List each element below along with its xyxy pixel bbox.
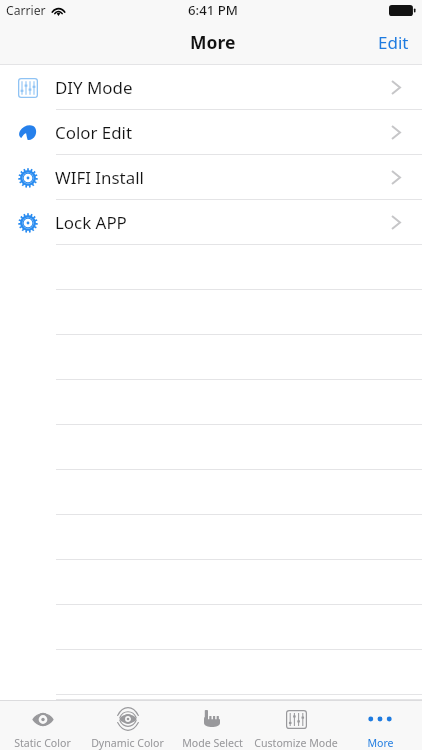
staticText: Mode Select: [182, 736, 243, 750]
button[interactable]: Mode Select: [170, 701, 254, 750]
button[interactable]: Lock APP: [0, 200, 422, 245]
button[interactable]: Edit: [364, 21, 422, 64]
staticText: More: [367, 736, 394, 750]
staticText: More: [190, 30, 236, 54]
staticText: Carrier: [6, 2, 46, 19]
staticText: Color Edit: [55, 121, 133, 144]
staticText: Customize Mode: [254, 736, 338, 750]
button[interactable]: Static Color: [0, 701, 85, 750]
button[interactable]: Customize Mode: [254, 701, 338, 750]
button[interactable]: WIFI Install: [0, 155, 422, 200]
button[interactable]: More: [338, 701, 422, 750]
button[interactable]: Color Edit: [0, 110, 422, 155]
staticText: Edit: [378, 31, 409, 54]
staticText: Dynamic Color: [91, 736, 164, 750]
staticText: 6:41 PM: [188, 1, 238, 19]
staticText: WIFI Install: [55, 166, 144, 189]
staticText: DIY Mode: [55, 76, 133, 99]
staticText: Lock APP: [55, 211, 127, 234]
button[interactable]: DIY Mode: [0, 65, 422, 110]
button[interactable]: Dynamic Color: [85, 701, 170, 750]
staticText: Static Color: [14, 736, 71, 750]
